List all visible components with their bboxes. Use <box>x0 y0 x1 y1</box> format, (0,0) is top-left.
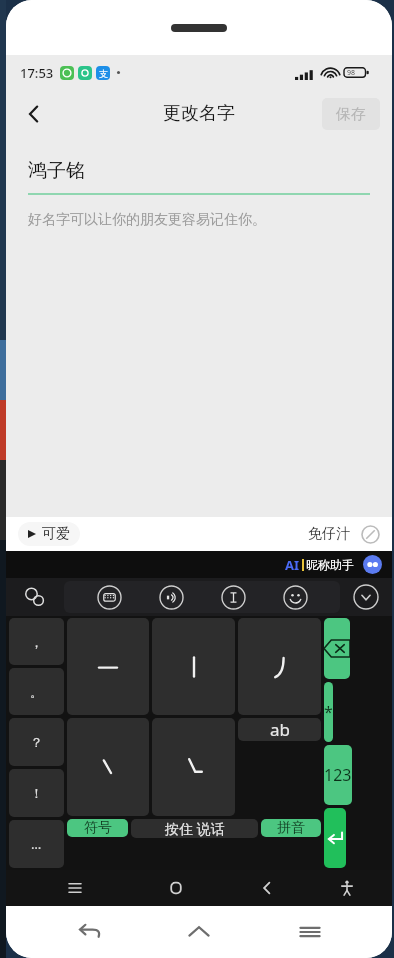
button[interactable]: 按住 说话 <box>131 819 258 838</box>
staticText: 拼音 <box>277 819 305 837</box>
button[interactable] <box>67 618 149 715</box>
button[interactable]: Handwriting <box>216 581 250 613</box>
button[interactable]: 可爱 <box>18 522 80 546</box>
button[interactable]: … <box>9 820 64 868</box>
staticText: ！ <box>30 785 43 801</box>
staticText: ， <box>30 634 43 650</box>
button[interactable]: Accessibility <box>330 871 364 905</box>
button[interactable] <box>152 618 235 715</box>
staticText: 保存 <box>336 105 366 124</box>
staticText: 按住 说话 <box>165 819 225 838</box>
staticText: 好名字可以让你的朋友更容易记住你。 <box>28 211 266 229</box>
staticText: 98 <box>347 68 356 78</box>
button[interactable] <box>238 618 321 715</box>
button[interactable]: Back <box>61 906 117 958</box>
button[interactable]: Menu <box>58 871 92 905</box>
staticText: 。 <box>30 684 43 700</box>
button[interactable]: Hide keyboard <box>340 578 392 616</box>
button[interactable]: Voice <box>154 581 188 613</box>
button[interactable]: ？ <box>9 718 64 766</box>
staticText: 鸿子铭 <box>28 159 85 183</box>
staticText: 更改名字 <box>163 102 235 125</box>
staticText: … <box>31 835 42 853</box>
button[interactable]: Back <box>250 871 284 905</box>
staticText: 昵称助手 <box>306 557 354 572</box>
button[interactable]: Refresh <box>360 524 380 544</box>
staticText: * <box>324 701 333 723</box>
button[interactable]: Emoji <box>278 581 312 613</box>
button[interactable] <box>67 718 149 816</box>
staticText: 支 <box>99 68 108 79</box>
button[interactable]: Home <box>171 906 227 958</box>
staticText: ？ <box>30 734 43 750</box>
button[interactable]: ， <box>9 618 64 665</box>
staticText: ab <box>270 718 290 741</box>
button[interactable]: Delete <box>324 618 350 679</box>
button[interactable]: * <box>324 682 333 742</box>
button[interactable]: WeChat <box>6 578 64 616</box>
button[interactable]: ab <box>238 718 321 741</box>
button[interactable]: Enter <box>324 808 346 868</box>
staticText: 可爱 <box>42 525 70 543</box>
button[interactable]: 符号 <box>67 819 128 837</box>
staticText: 123 <box>324 764 352 786</box>
button[interactable]: AI assistant <box>363 555 382 574</box>
button[interactable]: 拼音 <box>261 819 321 837</box>
staticText: AI <box>285 556 300 574</box>
button[interactable]: Home <box>159 871 193 905</box>
staticText: 17:53 <box>20 64 54 82</box>
button[interactable]: ！ <box>9 769 64 817</box>
button[interactable] <box>152 718 235 816</box>
staticText: 符号 <box>84 819 112 837</box>
staticText: 免仔汁 <box>308 525 350 543</box>
button[interactable]: Recents <box>282 906 338 958</box>
button[interactable]: 123 <box>324 745 352 805</box>
button[interactable]: 保存 <box>322 98 380 130</box>
button[interactable]: Keyboard <box>92 581 126 613</box>
button[interactable]: Back <box>12 92 56 136</box>
button[interactable]: 。 <box>9 668 64 715</box>
